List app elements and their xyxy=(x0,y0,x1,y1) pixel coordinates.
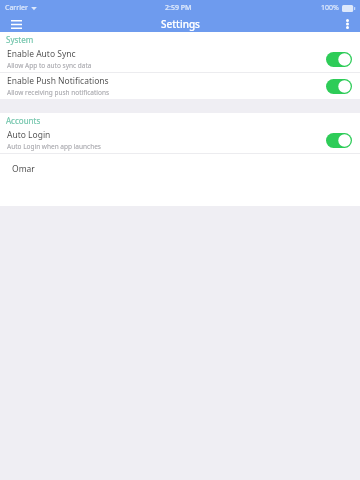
button[interactable]: More options xyxy=(334,16,360,32)
button[interactable]: Enable Push Notifications xyxy=(0,73,360,99)
button[interactable]: Open navigation menu xyxy=(0,16,32,32)
staticText: System xyxy=(6,34,34,45)
staticText: Allow App to auto sync data xyxy=(7,61,92,70)
staticText: Auto Login when app launches xyxy=(7,142,101,151)
button[interactable]: Toggle setting, on xyxy=(326,79,352,94)
staticText: Settings xyxy=(161,17,200,31)
staticText: 2:59 PM xyxy=(165,3,192,13)
staticText: Accounts xyxy=(6,115,41,126)
button[interactable]: Toggle setting, on xyxy=(326,52,352,67)
staticText: Carrier xyxy=(5,3,28,13)
staticText: Allow receiving push notifications xyxy=(7,88,110,97)
button[interactable]: Toggle setting, on xyxy=(326,133,352,148)
staticText: Omar xyxy=(12,163,35,175)
staticText: Enable Auto Sync xyxy=(7,48,76,60)
staticText: 100% xyxy=(321,3,339,13)
button[interactable]: Auto Login xyxy=(0,127,360,153)
staticText: Auto Login xyxy=(7,129,51,141)
button[interactable]: Omar xyxy=(0,154,360,206)
staticText: Enable Push Notifications xyxy=(7,75,109,87)
button[interactable]: Enable Auto Sync xyxy=(0,46,360,72)
